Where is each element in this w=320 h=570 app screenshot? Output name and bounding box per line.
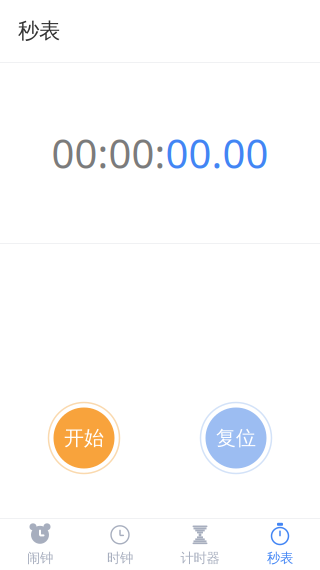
button[interactable]: 秒表 xyxy=(240,518,320,570)
button[interactable]: 复位 xyxy=(196,398,276,478)
staticText: 00:00: xyxy=(51,126,165,179)
staticText: 秒表 xyxy=(267,550,293,566)
staticText: 闹钟 xyxy=(27,550,53,566)
button[interactable]: 开始 xyxy=(44,398,124,478)
staticText: 00.00 xyxy=(165,126,268,179)
button[interactable]: 计时器 xyxy=(160,518,240,570)
staticText: 开始 xyxy=(64,426,104,450)
button[interactable]: 闹钟 xyxy=(0,518,80,570)
staticText: 计时器 xyxy=(180,550,219,566)
staticText: 时钟 xyxy=(107,550,133,566)
button[interactable]: 时钟 xyxy=(80,518,160,570)
staticText: 复位 xyxy=(216,426,256,450)
staticText: 秒表 xyxy=(18,18,60,44)
